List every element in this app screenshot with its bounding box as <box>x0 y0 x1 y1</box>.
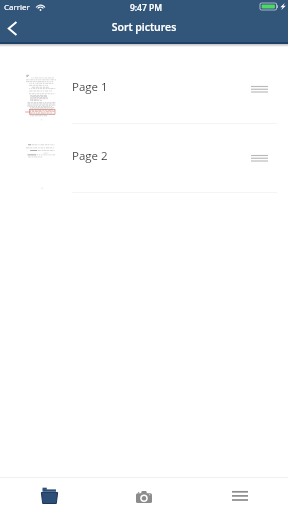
staticText: 9:47 PM <box>2 2 288 14</box>
button[interactable]: Page 2 <box>0 124 288 193</box>
staticText: Page 2 <box>72 148 108 164</box>
staticText: Carrier <box>4 1 30 12</box>
staticText: Page 1 <box>72 79 108 95</box>
button[interactable]: Camera <box>123 477 165 512</box>
button[interactable]: Page 1 <box>0 55 288 124</box>
button[interactable]: Back <box>0 16 26 44</box>
staticText: Sort pictures <box>0 20 288 34</box>
button[interactable]: Menu <box>219 477 261 512</box>
button[interactable]: Folders <box>28 477 70 512</box>
